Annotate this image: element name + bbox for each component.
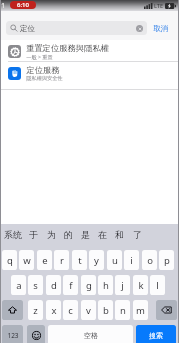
button[interactable]: 定位服務 — [0, 62, 179, 84]
staticText: b — [103, 304, 109, 317]
staticText: k — [138, 279, 144, 292]
staticText: 搜索 — [149, 331, 163, 340]
staticText: 在 — [98, 229, 107, 240]
button[interactable]: Clear text — [136, 25, 143, 32]
button[interactable]: u — [107, 250, 122, 270]
staticText: w — [23, 254, 31, 267]
staticText: 取消 — [153, 24, 168, 33]
button[interactable]: h — [98, 275, 113, 295]
staticText: c — [68, 304, 73, 317]
button[interactable]: 于 — [25, 225, 42, 244]
staticText: t — [78, 254, 82, 267]
button[interactable]: 了 — [129, 225, 146, 244]
button[interactable]: 重置定位服務與隱私權 — [0, 40, 179, 62]
staticText: p — [164, 254, 170, 267]
staticText: y — [94, 254, 99, 267]
button[interactable]: n — [115, 300, 130, 320]
button[interactable]: 定位 — [6, 21, 147, 35]
button[interactable]: t — [72, 250, 87, 270]
button[interactable]: 搜索 — [136, 325, 176, 343]
staticText: f — [69, 279, 73, 292]
button[interactable]: Emoji keyboard — [27, 325, 45, 343]
button[interactable]: k — [133, 275, 148, 295]
staticText: i — [130, 254, 133, 267]
staticText: v — [86, 304, 91, 317]
button[interactable]: r — [54, 250, 69, 270]
staticText: 了 — [133, 229, 142, 240]
button[interactable]: 的 — [60, 225, 77, 244]
button[interactable]: b — [98, 300, 113, 320]
staticText: r — [60, 254, 64, 267]
button[interactable]: q — [2, 250, 17, 270]
staticText: h — [103, 279, 109, 292]
button[interactable]: m — [133, 300, 148, 320]
staticText: u — [112, 254, 118, 267]
button[interactable]: 是 — [77, 225, 94, 244]
button[interactable]: j — [115, 275, 130, 295]
button[interactable]: f — [63, 275, 78, 295]
button[interactable]: w — [19, 250, 34, 270]
button[interactable]: 和 — [111, 225, 128, 244]
staticText: 系统 — [4, 229, 22, 240]
button[interactable]: i — [124, 250, 139, 270]
staticText: 重置定位服務與隱私權 — [26, 43, 109, 53]
button[interactable]: s — [28, 275, 43, 295]
staticText: 和 — [115, 229, 124, 240]
button[interactable]: e — [37, 250, 52, 270]
button[interactable]: 取消 — [153, 21, 168, 35]
button[interactable]: 在 — [94, 225, 111, 244]
staticText: 为 — [47, 229, 56, 240]
staticText: 的 — [64, 229, 73, 240]
staticText: 是 — [81, 229, 90, 240]
staticText: z — [33, 304, 38, 317]
staticText: d — [51, 279, 57, 292]
button[interactable]: Backspace — [156, 300, 177, 320]
button[interactable]: o — [142, 250, 157, 270]
staticText: g — [86, 279, 92, 292]
staticText: e — [42, 254, 48, 267]
staticText: l — [156, 279, 159, 292]
staticText: j — [121, 279, 124, 292]
staticText: 空格 — [84, 331, 98, 340]
staticText: o — [147, 254, 153, 267]
staticText: LTE — [154, 2, 163, 9]
staticText: x — [51, 304, 57, 317]
staticText: s — [33, 279, 38, 292]
button[interactable]: 系统 — [2, 225, 23, 244]
staticText: 定位服務 — [26, 65, 60, 75]
staticText: 于 — [29, 229, 38, 240]
staticText: 1 — [1, 1, 5, 10]
button[interactable]: g — [81, 275, 96, 295]
staticText: 一般 > 重置 — [26, 53, 53, 60]
button[interactable]: c — [63, 300, 78, 320]
button[interactable]: a — [11, 275, 26, 295]
button[interactable]: y — [89, 250, 104, 270]
button[interactable]: Shift — [2, 300, 23, 320]
staticText: 定位 — [20, 24, 35, 33]
staticText: m — [136, 304, 145, 317]
button[interactable]: 123 — [2, 325, 23, 343]
button[interactable]: 为 — [43, 225, 60, 244]
button[interactable]: z — [28, 300, 43, 320]
button[interactable]: v — [81, 300, 96, 320]
staticText: n — [120, 304, 126, 317]
button[interactable]: d — [46, 275, 61, 295]
staticText: a — [16, 279, 22, 292]
staticText: q — [7, 254, 13, 267]
button[interactable]: l — [150, 275, 165, 295]
staticText: 隱私權與安全性 — [26, 75, 63, 82]
staticText: 6:10 — [17, 1, 29, 9]
button[interactable]: p — [159, 250, 174, 270]
button[interactable]: 空格 — [48, 325, 133, 343]
button[interactable]: x — [46, 300, 61, 320]
staticText: 123 — [7, 331, 19, 340]
